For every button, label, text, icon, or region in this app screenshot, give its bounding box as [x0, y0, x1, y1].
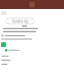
button[interactable]: Send a tip [6, 18, 34, 24]
staticText: Send a tip [12, 18, 28, 24]
